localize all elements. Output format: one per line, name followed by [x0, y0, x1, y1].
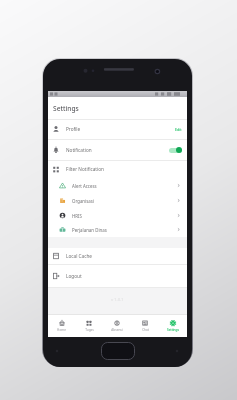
staticText: Local Cache [66, 253, 92, 259]
staticText: Filter Notification [66, 166, 104, 172]
button[interactable]: HRIS [48, 208, 187, 223]
staticText: Logout [66, 273, 82, 279]
staticText: Chat [142, 328, 149, 332]
button[interactable]: Filter Notification [48, 160, 187, 178]
staticText: Edit [175, 127, 182, 132]
staticText: Settings [167, 328, 179, 332]
staticText: Absensi [111, 328, 123, 332]
staticText: Home [57, 328, 66, 332]
button[interactable]: Chat [131, 315, 159, 337]
staticText: Notification [66, 147, 92, 153]
staticText: Profile [66, 126, 81, 132]
staticText: v 1.0.1 [111, 297, 124, 303]
staticText: Perjalanan Dinas [72, 227, 107, 233]
staticText: Tugas [85, 328, 94, 332]
button[interactable]: Settings [159, 315, 187, 337]
button[interactable]: Notification toggle [169, 147, 182, 153]
staticText: HRIS [72, 213, 82, 219]
button[interactable]: Notification [48, 139, 187, 160]
button[interactable]: Alert Access [48, 178, 187, 193]
button[interactable]: Organisasi [48, 193, 187, 208]
staticText: Organisasi [72, 198, 95, 204]
button[interactable]: Profile [48, 119, 187, 139]
button[interactable]: Tugas [75, 315, 103, 337]
button[interactable]: Absensi [103, 315, 131, 337]
button[interactable]: Local Cache [48, 248, 187, 264]
button[interactable]: Logout [48, 264, 187, 287]
button[interactable]: Perjalanan Dinas [48, 222, 187, 237]
staticText: Settings [53, 104, 79, 113]
staticText: Alert Access [72, 183, 97, 189]
button[interactable]: Home [48, 315, 75, 337]
